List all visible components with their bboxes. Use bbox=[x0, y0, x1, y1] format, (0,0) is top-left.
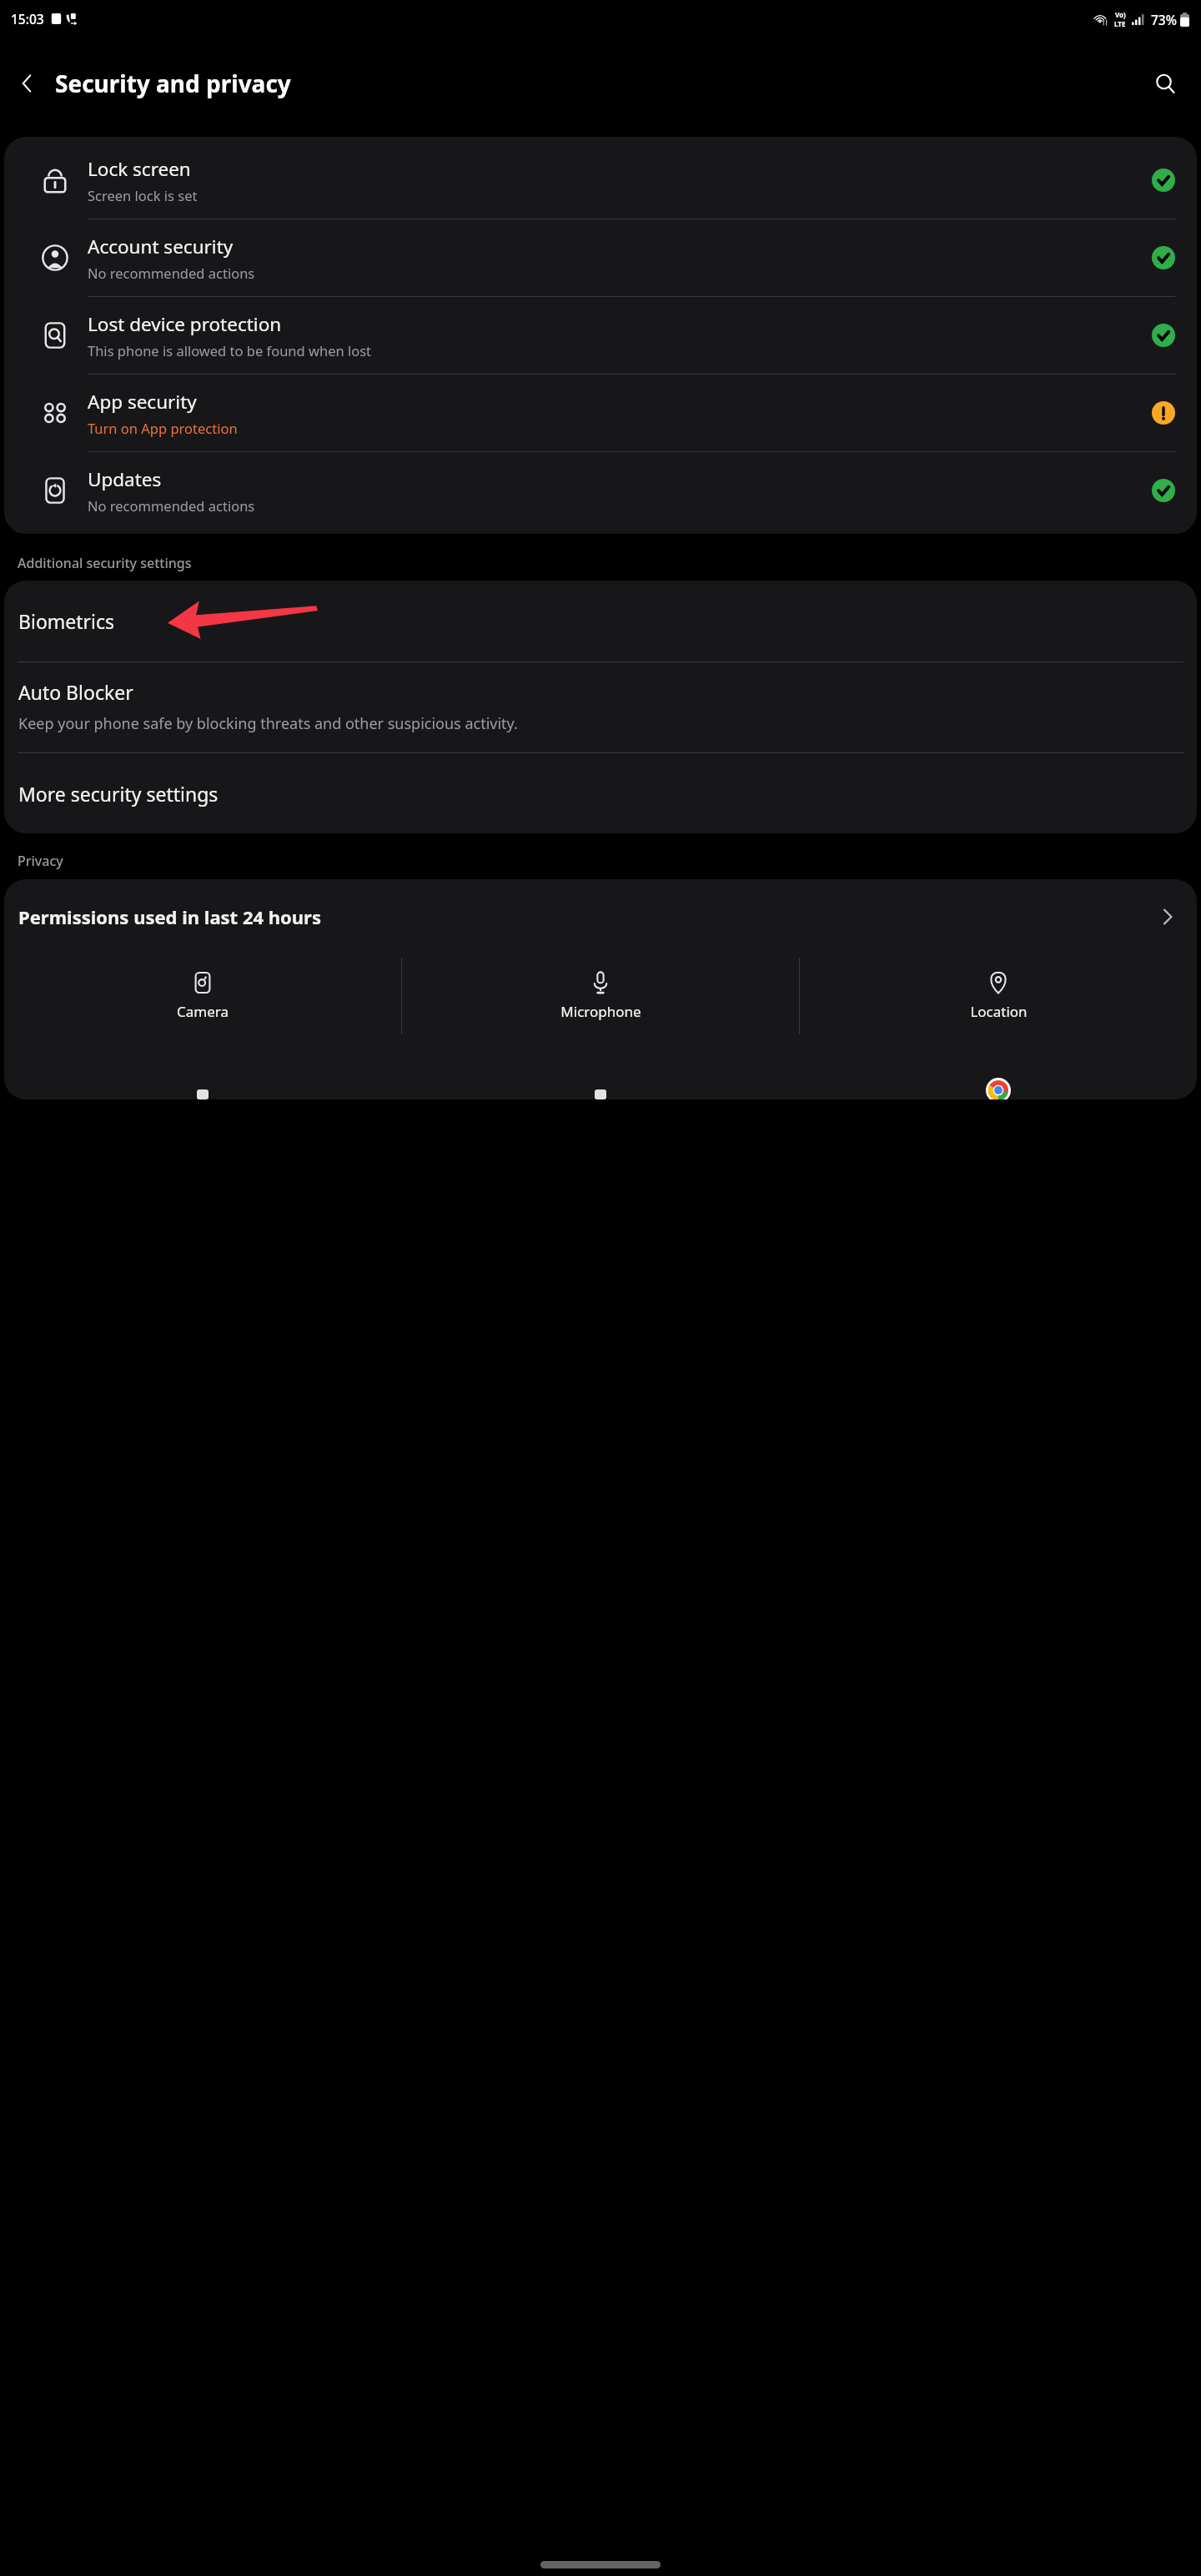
staticText: Updates bbox=[88, 466, 162, 492]
staticText: App security bbox=[88, 389, 197, 415]
staticText: Auto Blocker bbox=[18, 679, 133, 705]
staticText: Additional security settings bbox=[18, 554, 192, 572]
button[interactable]: Permissions used in last 24 hours bbox=[4, 879, 1197, 951]
staticText: Screen lock is set bbox=[88, 186, 198, 204]
button[interactable]: Auto Blocker bbox=[4, 662, 1197, 752]
staticText: More security settings bbox=[18, 781, 219, 807]
button[interactable]: More security settings bbox=[4, 753, 1197, 833]
staticText: No recommended actions bbox=[88, 264, 255, 282]
button[interactable]: Lost device protection bbox=[4, 297, 1197, 374]
staticText: 73% bbox=[1151, 11, 1177, 28]
staticText: Biometrics bbox=[18, 608, 115, 634]
staticText: Keep your phone safe by blocking threats… bbox=[18, 713, 518, 734]
button[interactable]: Back bbox=[5, 61, 50, 106]
button[interactable]: Account security bbox=[4, 219, 1197, 296]
staticText: Permissions used in last 24 hours bbox=[18, 904, 1158, 929]
staticText: Security and privacy bbox=[55, 68, 291, 99]
staticText: Account security bbox=[88, 234, 234, 259]
staticText: Lock screen bbox=[88, 156, 191, 182]
staticText: LTE bbox=[1114, 19, 1126, 28]
staticText: Privacy bbox=[18, 852, 63, 870]
staticText: 15:03 bbox=[11, 10, 44, 28]
button[interactable]: Location bbox=[800, 966, 1197, 1026]
staticText: This phone is allowed to be found when l… bbox=[88, 341, 372, 360]
button[interactable]: Lock screen bbox=[4, 142, 1197, 219]
staticText: Location bbox=[970, 1002, 1028, 1021]
staticText: Microphone bbox=[560, 1002, 641, 1021]
button[interactable]: App security bbox=[4, 375, 1197, 451]
button[interactable]: Camera bbox=[4, 966, 401, 1026]
staticText: Vo) bbox=[1115, 10, 1126, 19]
button[interactable]: Biometrics bbox=[4, 581, 1197, 662]
button[interactable]: Search bbox=[1143, 61, 1188, 106]
staticText: Camera bbox=[177, 1002, 229, 1021]
staticText: Lost device protection bbox=[88, 311, 282, 337]
staticText: No recommended actions bbox=[88, 496, 255, 515]
staticText: Turn on App protection bbox=[88, 419, 238, 437]
button[interactable]: Updates bbox=[4, 452, 1197, 529]
button[interactable]: Microphone bbox=[402, 966, 799, 1026]
